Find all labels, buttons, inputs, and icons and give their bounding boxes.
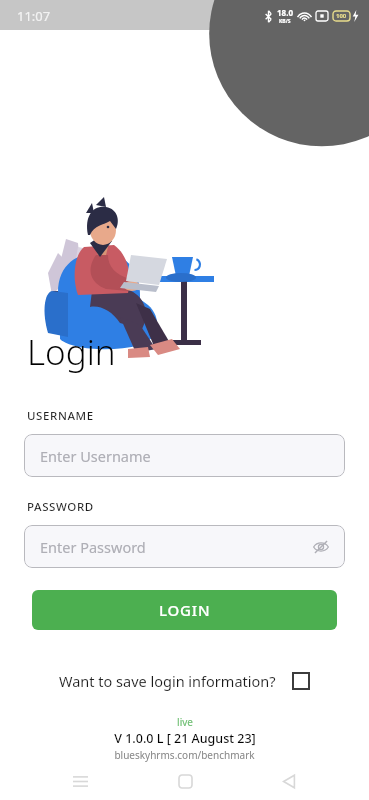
button[interactable]: Back — [265, 762, 313, 800]
staticText: 11:07 — [17, 7, 51, 25]
staticText: LOGIN — [159, 600, 211, 620]
button[interactable]: Home — [161, 762, 209, 800]
button[interactable]: Want to save login information? — [0, 667, 369, 695]
staticText: 100 — [336, 12, 347, 20]
staticText: blueskyhrms.com/benchmark — [114, 748, 255, 762]
staticText: Enter Username — [40, 446, 151, 466]
button[interactable]: Show password — [309, 535, 333, 559]
staticText: KB/S — [279, 18, 291, 25]
staticText: Enter Password — [40, 537, 146, 557]
staticText: Login — [27, 328, 116, 376]
staticText: USERNAME — [27, 408, 94, 424]
staticText: PASSWORD — [27, 499, 94, 515]
staticText: V 1.0.0 L [ 21 August 23] — [114, 730, 256, 747]
button[interactable]: Enter Username — [24, 434, 345, 477]
staticText: live — [177, 715, 193, 729]
staticText: Want to save login information? — [59, 671, 276, 691]
button[interactable]: Enter Password — [24, 525, 345, 568]
staticText: 18.0 — [277, 7, 293, 18]
button[interactable]: LOGIN — [32, 590, 337, 630]
button[interactable]: Recents — [56, 762, 104, 800]
